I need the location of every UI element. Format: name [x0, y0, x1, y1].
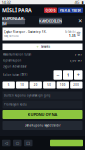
- staticText: Ev Sahibi: [65, 30, 76, 34]
- staticText: ＋: [35, 44, 39, 49]
- staticText: PARA YATIR: [59, 8, 81, 13]
- staticText: Kolon tutarı (TRY): [2, 73, 27, 77]
- button[interactable]: Kapat: [76, 18, 84, 24]
- button[interactable]: PARA YATIR: [58, 7, 83, 13]
- button[interactable]: 50: [43, 81, 55, 88]
- button[interactable]: Sil: [76, 28, 81, 39]
- staticText: 4G ▮: [74, 0, 83, 5]
- button[interactable]: Ana ekran: [13, 140, 21, 146]
- staticText: MİSLİ PARA: [2, 7, 32, 14]
- staticText: ◁: [5, 141, 8, 145]
- staticText: 5: [8, 83, 10, 87]
- staticText: 100: [60, 83, 66, 87]
- staticText: 200: [73, 83, 79, 87]
- staticText: Toplam kupon: [2, 59, 21, 62]
- staticText: KUPONLARIM: [2, 16, 25, 26]
- button[interactable]: Promosyon kodu: [2, 100, 82, 108]
- staticText: 0 TRY: [74, 53, 82, 56]
- staticText: □: [26, 141, 30, 145]
- staticText: Çaykur Rizespor - Gaziantep F.K.: [4, 30, 47, 34]
- button[interactable]: 100: [57, 81, 69, 88]
- button[interactable]: 0,00 ₺: [44, 7, 57, 13]
- button[interactable]: Azalt: [53, 70, 62, 80]
- staticText: 10: [20, 83, 24, 87]
- staticText: KAYDEDİLEN: [39, 18, 62, 24]
- staticText: Maç Sonucu: [4, 34, 19, 38]
- staticText: 1.35: [69, 34, 76, 38]
- staticText: Daha Kuponu kaydet/sildir: [24, 124, 60, 127]
- staticText: KUPONU OYNA: [27, 112, 57, 117]
- button[interactable]: 20: [30, 81, 42, 88]
- staticText: 20: [34, 83, 38, 87]
- staticText: 🗑: [76, 32, 81, 36]
- staticText: 0,00 ₺: [45, 8, 55, 13]
- staticText: Promosyon kodu: [4, 103, 27, 106]
- button[interactable]: KAYDEDİLEN: [39, 18, 62, 24]
- button[interactable]: Geri: [2, 140, 10, 146]
- button[interactable]: ＋: [2, 43, 82, 50]
- staticText: Tamamla: [40, 45, 49, 48]
- staticText: Bülten kuponu oynamak için giriş: [4, 94, 50, 97]
- staticText: −: [56, 71, 59, 79]
- button[interactable]: 10: [16, 81, 28, 88]
- button[interactable]: Son uygulamalar: [24, 140, 32, 146]
- button[interactable]: 200: [70, 81, 82, 88]
- staticText: +: [77, 71, 80, 79]
- button[interactable]: 5: [2, 81, 15, 88]
- staticText: Uygun Advanstalar: [2, 65, 26, 68]
- staticText: ○: [16, 141, 19, 145]
- staticText: 50: [47, 83, 51, 87]
- button[interactable]: Daha Kuponu kaydet/sildir: [2, 121, 82, 130]
- staticText: 1: [67, 72, 69, 78]
- staticText: ✕: [78, 18, 82, 24]
- staticText: Maksimum kolon tutarı: [2, 53, 31, 56]
- staticText: 14:32: [1, 0, 10, 5]
- button[interactable]: Arttır: [74, 70, 82, 80]
- button[interactable]: KUPONLARIM: [2, 18, 25, 24]
- button[interactable]: KUPONU OYNA: [2, 110, 82, 119]
- staticText: 0,00 TRY: [69, 59, 82, 62]
